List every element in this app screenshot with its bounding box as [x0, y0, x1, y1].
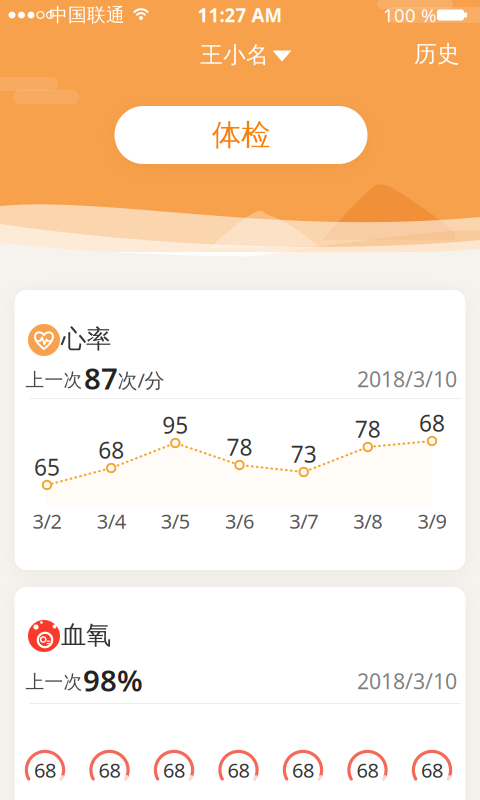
staticText: 3/8 [353, 508, 382, 534]
button[interactable]: 王小名 [181, 31, 296, 75]
button[interactable]: 历史 [407, 32, 467, 76]
staticText: 68 [34, 757, 56, 783]
staticText: 68 [98, 757, 120, 783]
staticText: 68 [419, 408, 445, 438]
staticText: 体检 [212, 117, 270, 153]
staticText: 78 [355, 414, 381, 444]
staticText: 3/6 [225, 508, 254, 534]
staticText: 68 [292, 757, 314, 783]
staticText: 11:27 AM [197, 3, 282, 27]
staticText: 95 [162, 410, 188, 440]
staticText: 68 [421, 757, 443, 783]
staticText: 中国联通 [49, 3, 125, 26]
staticText: 73 [291, 439, 317, 469]
staticText: 次/分 [117, 367, 164, 393]
staticText: 历史 [414, 40, 460, 68]
staticText: 100 % [383, 3, 437, 27]
staticText: 65 [34, 452, 60, 482]
staticText: 3/7 [289, 508, 318, 534]
staticText: 3/2 [32, 508, 61, 534]
staticText: 3/4 [97, 508, 126, 534]
staticText: 98% [83, 660, 143, 699]
staticText: 2018/3/10 [357, 365, 457, 393]
staticText: 上一次 [25, 368, 82, 391]
staticText: 3/5 [161, 508, 190, 534]
staticText: 78 [226, 432, 252, 462]
staticText: 87 [84, 358, 118, 397]
staticText: 王小名 [200, 41, 269, 69]
staticText: 心率 [61, 323, 111, 354]
button[interactable]: 体检 [114, 106, 367, 164]
staticText: 68 [227, 757, 249, 783]
staticText: 68 [98, 435, 124, 465]
staticText: 血氧 [61, 619, 111, 650]
staticText: 3/9 [417, 508, 446, 534]
staticText: 68 [356, 757, 378, 783]
staticText: 2018/3/10 [357, 667, 457, 695]
staticText: 上一次 [25, 670, 82, 693]
staticText: 68 [163, 757, 185, 783]
